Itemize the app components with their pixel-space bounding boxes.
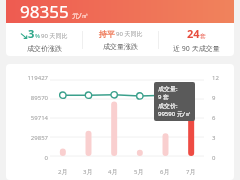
staticText: % <box>35 32 40 40</box>
staticText: 0 <box>44 154 48 162</box>
staticText: 90 天同比 <box>116 30 143 38</box>
staticText: 成交价涨跌 <box>27 44 62 53</box>
staticText: 6月 <box>160 168 170 176</box>
staticText: 9 <box>212 94 216 102</box>
staticText: 2月 <box>58 168 68 176</box>
staticText: 近 90 天成交量 <box>173 44 220 54</box>
staticText: 119427 <box>27 74 48 82</box>
staticText: 99590 元/㎡ <box>158 110 191 118</box>
staticText: 成交价: <box>158 102 178 110</box>
staticText: 3 <box>212 134 216 142</box>
staticText: 0 <box>212 154 216 162</box>
staticText: 持平 <box>99 29 115 39</box>
button[interactable]: 3 <box>6 23 82 56</box>
staticText: 12 <box>212 74 219 82</box>
staticText: 成交量: <box>158 85 178 93</box>
staticText: 9 套 <box>158 93 169 101</box>
staticText: 6 <box>212 114 216 122</box>
button[interactable]: 24 <box>159 23 234 56</box>
staticText: 59714 <box>30 114 48 122</box>
button[interactable]: 119427 <box>6 64 234 180</box>
staticText: 成交量涨跌 <box>103 42 138 51</box>
staticText: 套 <box>200 32 206 40</box>
staticText: 3月 <box>83 168 93 176</box>
staticText: 5月 <box>134 168 144 176</box>
staticText: 29857 <box>30 134 48 142</box>
staticText: 24 <box>187 26 200 41</box>
button[interactable]: 持平 <box>83 23 158 56</box>
staticText: 90 天同比 <box>41 32 68 40</box>
staticText: 98355 <box>20 0 69 23</box>
staticText: 3 <box>28 26 35 41</box>
staticText: 4月 <box>108 168 118 176</box>
button[interactable]: 98355 <box>6 0 234 23</box>
staticText: 7月 <box>186 168 196 176</box>
staticText: 89570 <box>30 94 48 102</box>
staticText: 元/㎡ <box>72 11 89 21</box>
